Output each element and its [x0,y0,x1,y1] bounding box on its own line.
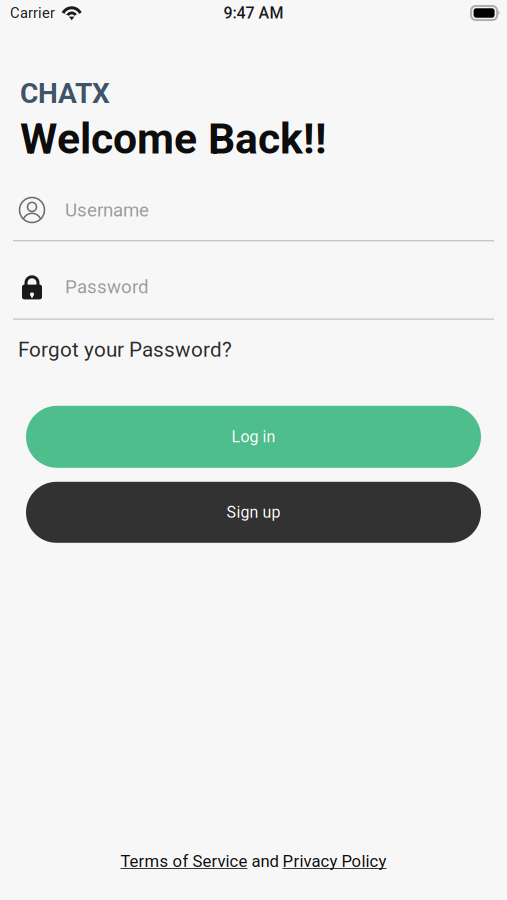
staticText: Password [65,276,149,298]
staticText: Carrier [10,4,55,22]
staticText: CHATX [20,77,110,110]
button[interactable]: Forgot your Password? [0,339,507,361]
staticText: Welcome Back!! [20,114,327,164]
staticText: Terms of Service [120,851,247,871]
staticText: and [247,851,282,871]
button[interactable]: Terms of Service [120,851,247,871]
button[interactable]: Sign up [26,482,481,543]
staticText: Privacy Policy [282,851,386,871]
staticText: Forgot your Password? [18,338,232,362]
button[interactable]: Log in [26,406,481,468]
staticText: Username [65,199,149,221]
staticText: 9:47 AM [223,4,283,22]
button[interactable]: Privacy Policy [282,851,386,871]
staticText: Sign up [226,503,280,522]
staticText: Log in [231,427,275,446]
